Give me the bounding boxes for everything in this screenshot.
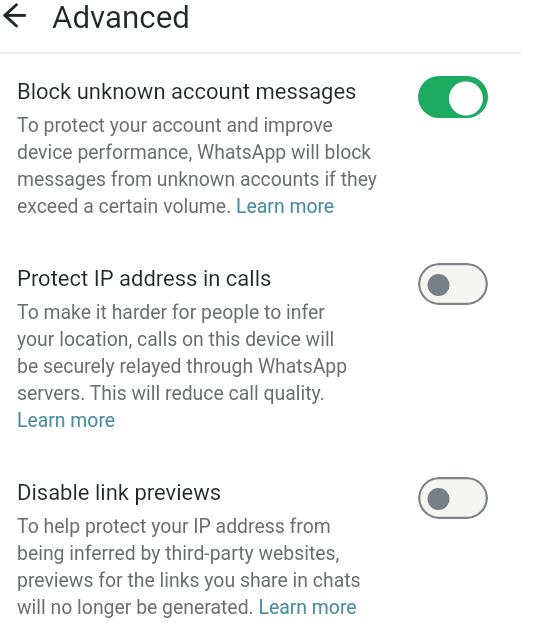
button[interactable]: Protect IP address in calls, off bbox=[418, 263, 488, 305]
staticText: Disable link previews bbox=[17, 480, 222, 506]
staticText: To help protect your IP address from bei… bbox=[17, 515, 361, 619]
staticText: Advanced bbox=[52, 0, 190, 36]
button[interactable]: Navigate up bbox=[0, 0, 32, 34]
button[interactable]: Protect IP address in calls bbox=[0, 266, 537, 432]
button[interactable]: Disable link previews, off bbox=[418, 477, 488, 519]
staticText: To make it harder for people to infer yo… bbox=[17, 301, 348, 432]
staticText: Protect IP address in calls bbox=[17, 266, 272, 292]
staticText: To protect your account and improve devi… bbox=[17, 114, 378, 218]
staticText: Block unknown account messages bbox=[17, 79, 357, 105]
button[interactable]: Block unknown account messages bbox=[0, 79, 537, 218]
button[interactable]: Disable link previews bbox=[0, 480, 537, 619]
button[interactable]: Block unknown account messages, on bbox=[418, 76, 488, 118]
